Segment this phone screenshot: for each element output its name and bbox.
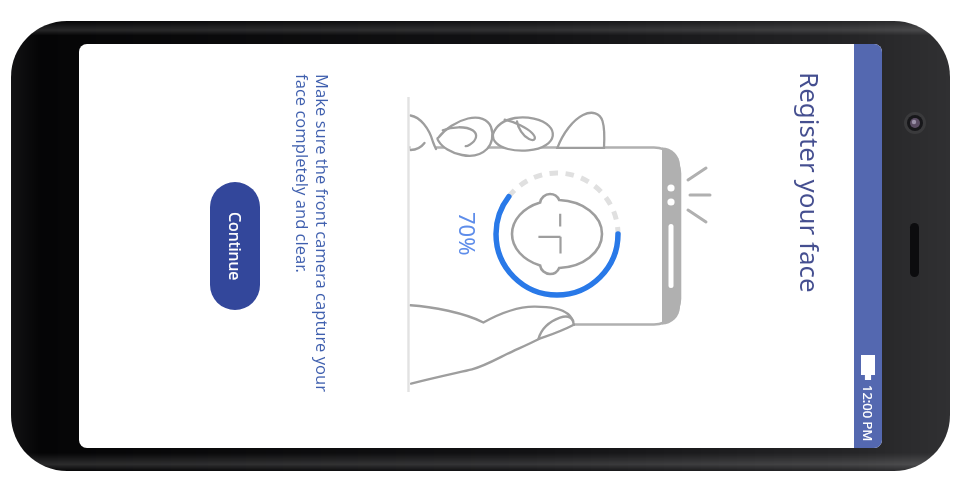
staticText: 12:00 PM <box>859 385 877 442</box>
staticText: Register your face <box>793 72 828 293</box>
staticText: 70% <box>455 212 483 256</box>
button[interactable]: Continue <box>210 182 260 310</box>
staticText: Make sure the front camera capture your … <box>291 74 334 404</box>
staticText: Continue <box>224 212 246 281</box>
